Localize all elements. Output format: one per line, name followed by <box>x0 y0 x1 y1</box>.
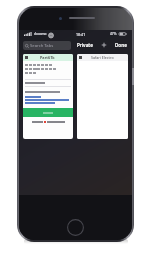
button[interactable]: New Tab <box>99 40 109 50</box>
staticText: Search Tabs <box>30 43 54 49</box>
staticText: 47% <box>110 32 117 36</box>
button[interactable]: Private <box>76 42 94 48</box>
button[interactable]: Search Tabs <box>23 41 71 50</box>
button[interactable]: Part61k <box>23 54 73 139</box>
button[interactable]: Safari Electro <box>77 54 128 139</box>
staticText: Part61k <box>40 55 55 60</box>
button[interactable]: Done <box>114 42 128 48</box>
button[interactable]: Home <box>67 219 84 236</box>
staticText: Done <box>115 42 127 48</box>
button[interactable] <box>23 108 73 117</box>
staticText: Safari Electro <box>91 55 114 60</box>
staticText: Private <box>77 42 93 48</box>
staticText: docomo <box>34 32 47 36</box>
staticText: 18:41 <box>76 32 86 37</box>
